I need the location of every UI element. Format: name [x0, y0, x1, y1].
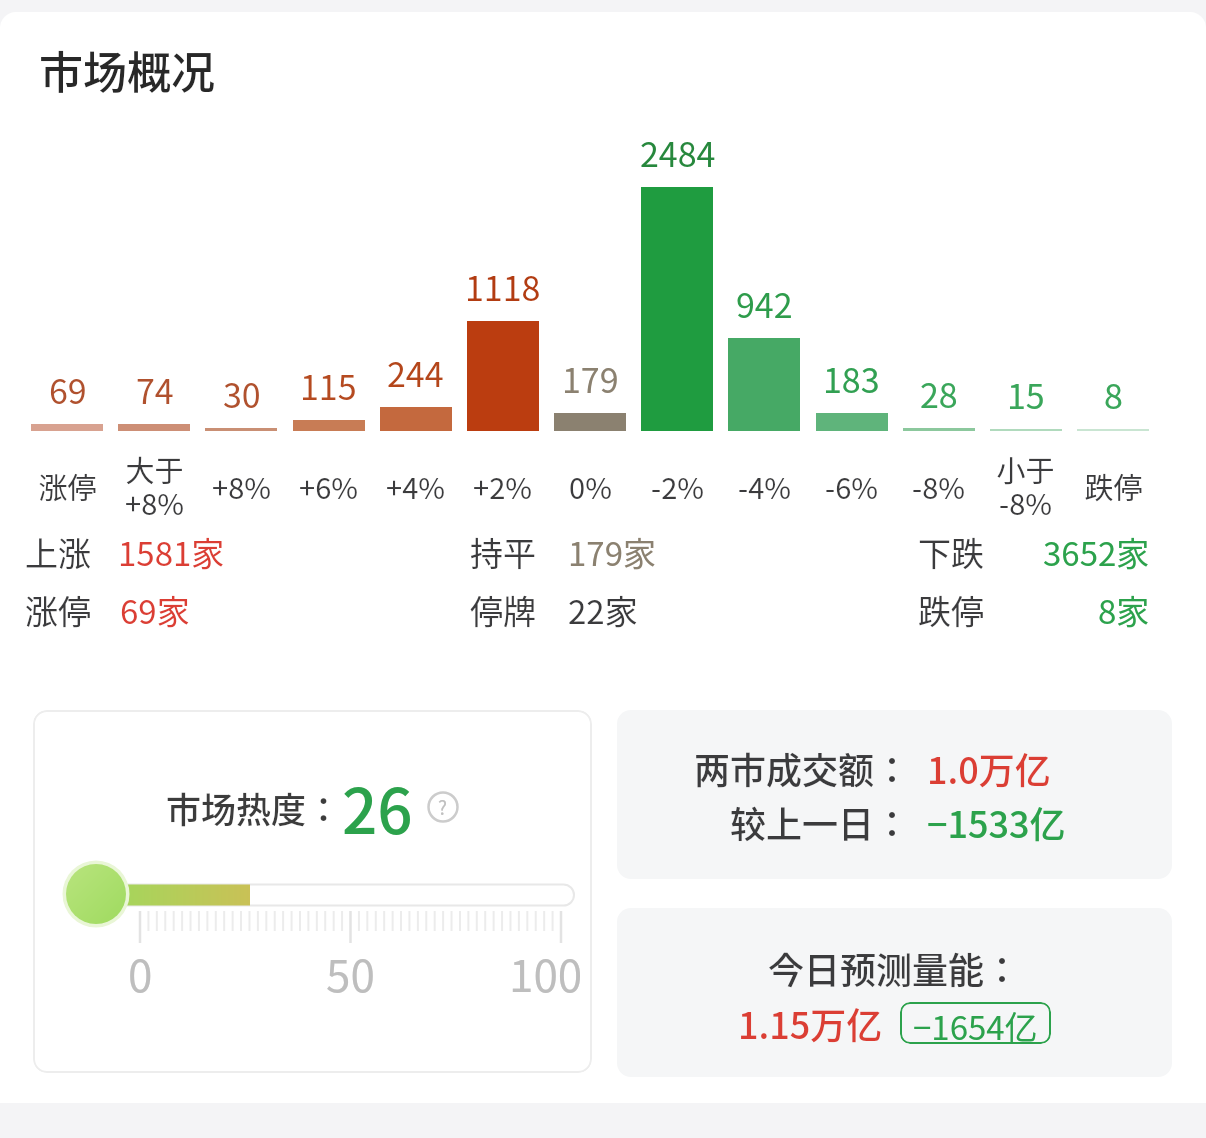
staticText: 244 — [387, 348, 444, 394]
staticText: 大于 +8% — [125, 448, 184, 524]
staticText: 50 — [326, 941, 375, 1005]
staticText: 1581家 — [118, 528, 225, 570]
staticText: 28 — [920, 369, 958, 415]
staticText: −1654亿 — [913, 1002, 1038, 1044]
staticText: 8 — [1104, 370, 1123, 416]
staticText: 179家 — [568, 528, 656, 570]
staticText: 跌停 — [918, 586, 984, 628]
staticText: 今日预测量能： — [768, 942, 1021, 990]
staticText: 市场热度： — [166, 782, 342, 833]
staticText: 停牌 — [470, 586, 536, 628]
staticText: 持平 — [470, 528, 536, 570]
staticText: 183 — [823, 354, 880, 400]
staticText: -4% — [738, 465, 791, 507]
staticText: ? — [438, 793, 448, 821]
staticText: 8家 — [1098, 586, 1150, 628]
staticText: -2% — [651, 465, 704, 507]
button[interactable]: ? — [427, 791, 459, 823]
staticText: 2484 — [640, 128, 716, 174]
button[interactable] — [617, 710, 1172, 879]
staticText: 115 — [300, 361, 357, 407]
staticText: 两市成交额： — [694, 742, 911, 790]
staticText: 30 — [223, 369, 261, 415]
staticText: +6% — [299, 465, 358, 507]
staticText: −1533亿 — [927, 796, 1066, 844]
staticText: 1118 — [465, 262, 541, 308]
staticText: 100 — [509, 941, 583, 1005]
staticText: 1.0万亿 — [927, 742, 1051, 790]
staticText: +4% — [386, 465, 445, 507]
staticText: 小于 -8% — [996, 448, 1055, 524]
staticText: 1.15万亿 — [738, 997, 883, 1049]
staticText: 74 — [136, 365, 174, 411]
staticText: 0% — [569, 465, 612, 507]
staticText: 较上一日： — [730, 796, 911, 844]
staticText: 市场概况 — [39, 38, 215, 96]
staticText: 942 — [736, 279, 793, 325]
staticText: 69家 — [120, 586, 190, 628]
staticText: -6% — [825, 465, 878, 507]
staticText: 涨停 — [38, 465, 97, 507]
staticText: +2% — [473, 465, 532, 507]
button[interactable] — [617, 908, 1172, 1077]
staticText: 26 — [342, 762, 413, 852]
staticText: 15 — [1007, 370, 1045, 416]
staticText: 跌停 — [1084, 465, 1143, 507]
staticText: -8% — [912, 465, 965, 507]
staticText: 0 — [128, 941, 153, 1005]
staticText: 下跌 — [918, 528, 984, 570]
staticText: 69 — [49, 365, 87, 411]
staticText: 上涨 — [25, 528, 91, 570]
staticText: 179 — [562, 354, 619, 400]
button[interactable]: −1654亿 — [900, 1002, 1051, 1044]
staticText: 22家 — [568, 586, 638, 628]
staticText: +8% — [212, 465, 271, 507]
staticText: 涨停 — [25, 586, 91, 628]
button[interactable] — [33, 710, 592, 1073]
staticText: 3652家 — [1043, 528, 1150, 570]
